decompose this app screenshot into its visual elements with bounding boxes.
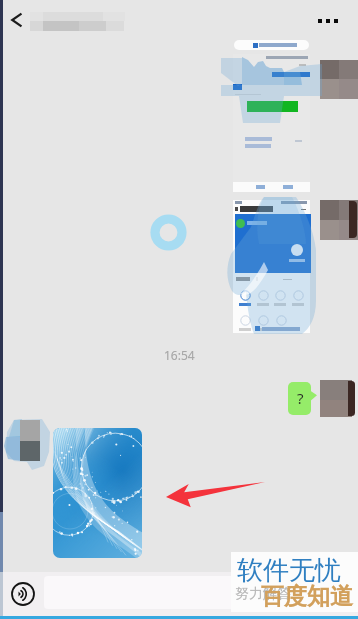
staticText: 百度知道 — [261, 582, 353, 611]
button[interactable]: Back — [0, 0, 30, 40]
staticText: ? — [297, 388, 304, 408]
button[interactable]: More options — [310, 0, 346, 40]
staticText: 软件无忧 — [237, 554, 341, 587]
button[interactable] — [44, 576, 328, 609]
staticText: 努力解答 — [235, 585, 291, 603]
staticText: 16:54 — [164, 347, 195, 363]
button[interactable]: Photo — [53, 428, 142, 558]
button[interactable]: ? — [288, 382, 318, 415]
button[interactable]: Voice input — [5, 578, 41, 609]
